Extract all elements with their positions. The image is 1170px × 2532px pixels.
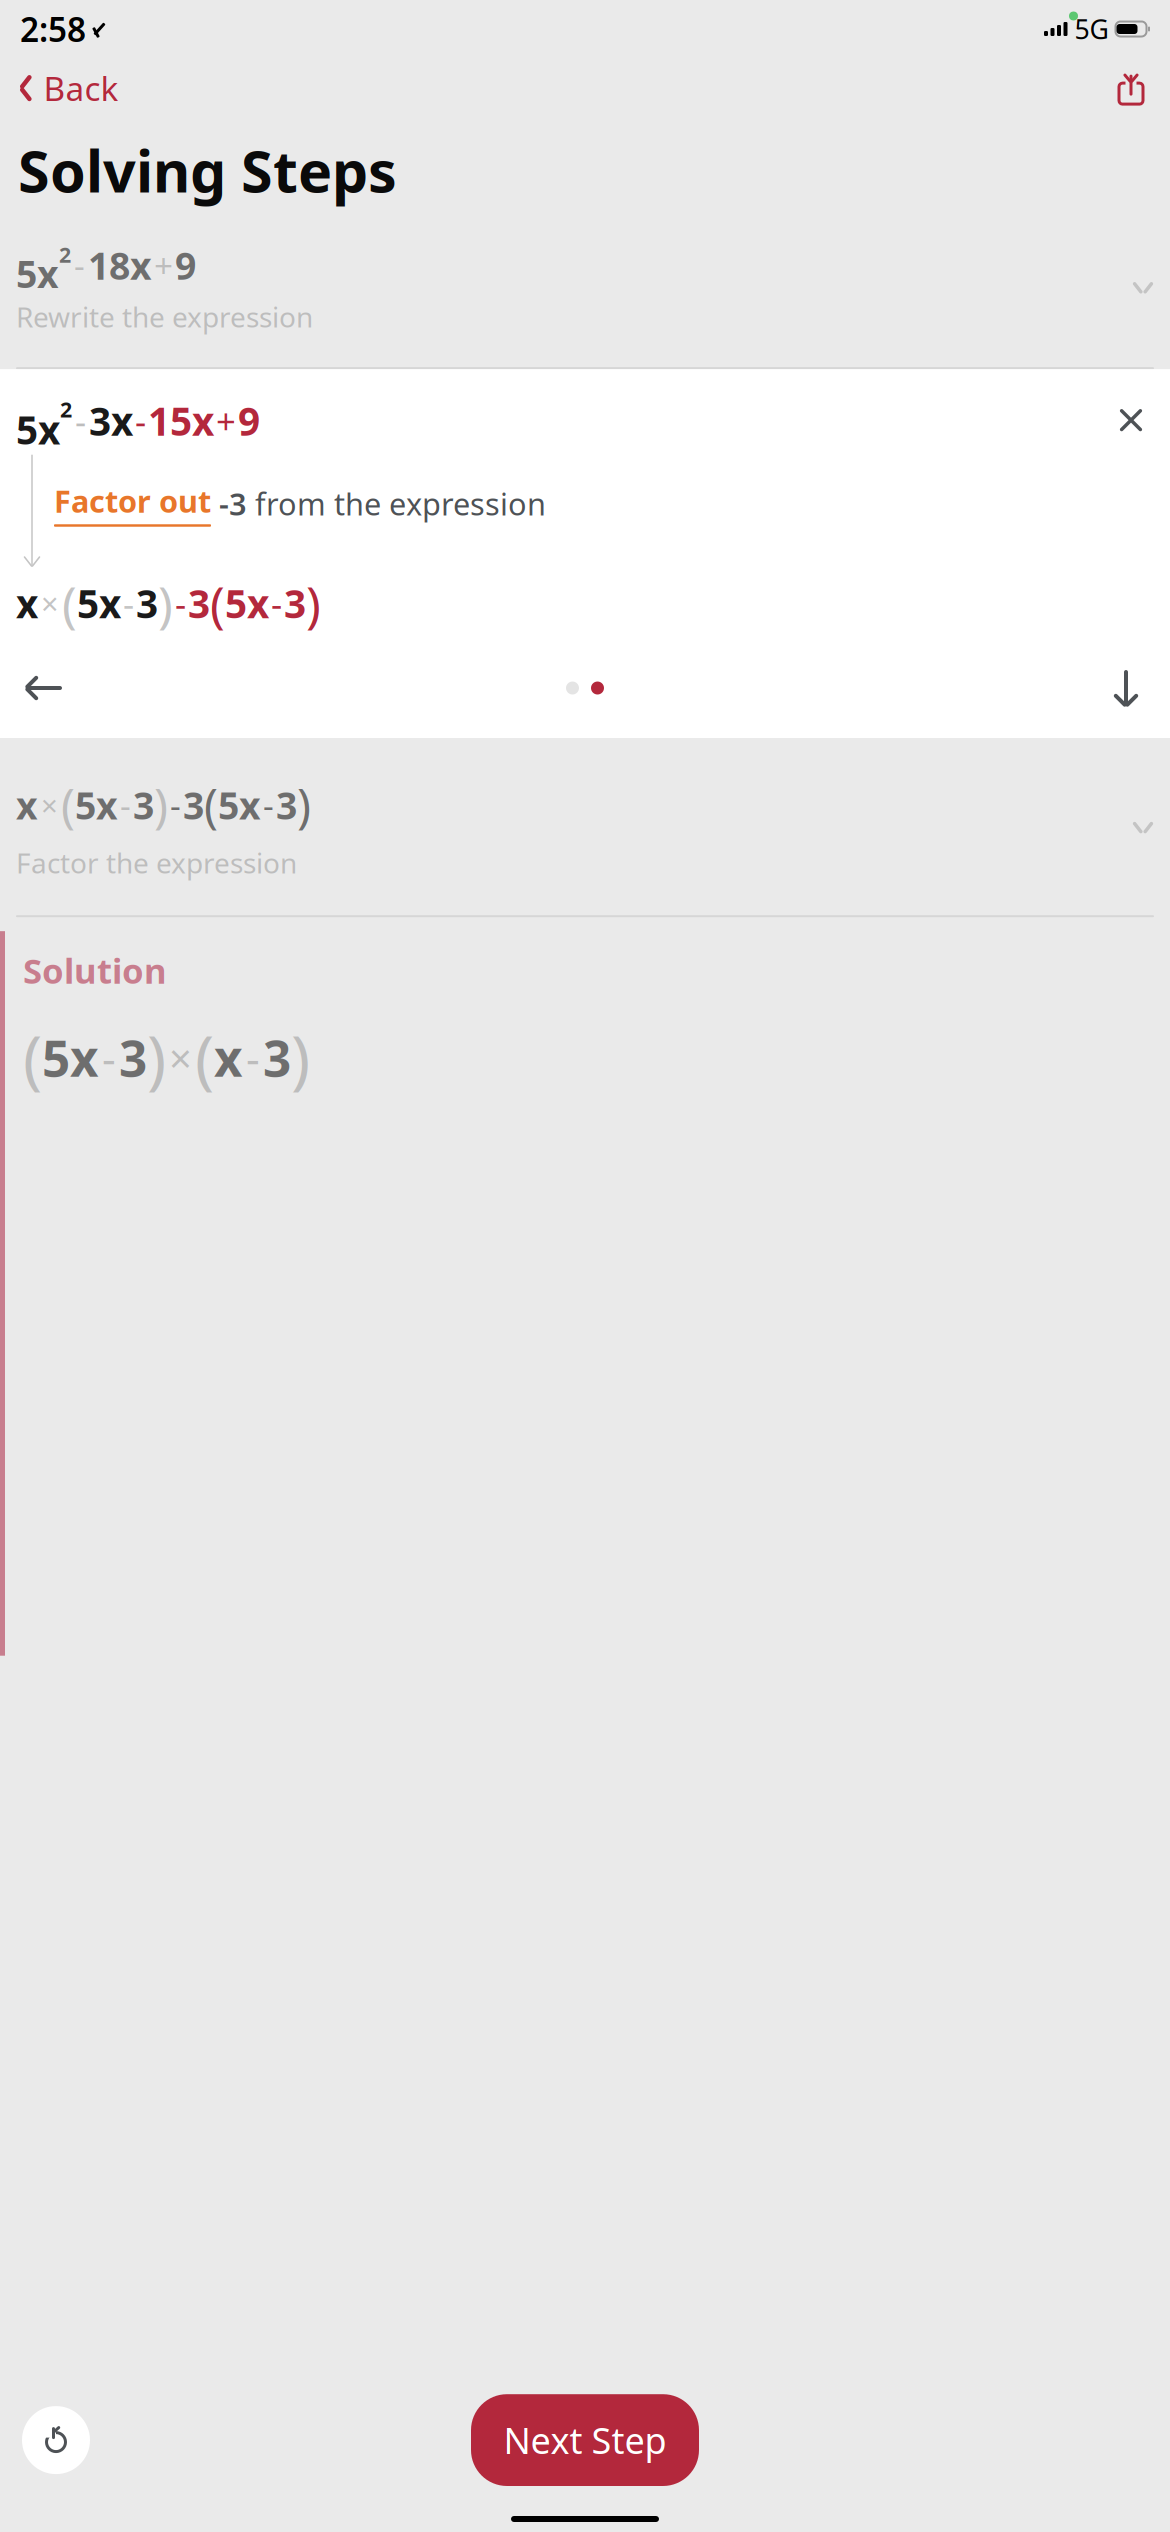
staticText: 2	[60, 395, 72, 423]
staticText: 3	[119, 1025, 147, 1090]
staticText: 5x	[16, 404, 60, 455]
staticText: ×	[169, 1031, 192, 1084]
staticText: Factor the expression	[16, 844, 297, 881]
staticText: 5x	[75, 780, 118, 830]
staticText: from the expression	[255, 483, 546, 524]
staticText: -	[135, 398, 146, 444]
staticText: -3	[211, 483, 255, 524]
button[interactable]: Previous hint	[16, 660, 72, 716]
staticText: 5x	[42, 1025, 99, 1090]
staticText: +	[216, 398, 236, 444]
staticText: 5G	[1074, 11, 1108, 47]
staticText: -	[74, 243, 85, 287]
button[interactable]: Next Step	[471, 2394, 699, 2486]
staticText: Factor out	[54, 480, 211, 521]
button[interactable]: Factor out	[54, 480, 211, 527]
button[interactable]: Undo	[22, 2406, 90, 2474]
staticText: 3	[276, 780, 297, 830]
staticText: (	[195, 1015, 214, 1100]
staticText: 2	[59, 240, 71, 269]
staticText: ×	[41, 583, 59, 624]
staticText: 18x	[88, 240, 152, 290]
staticText: Solving Steps	[18, 132, 397, 208]
staticText: x	[16, 578, 38, 629]
staticText: -	[75, 398, 86, 444]
staticText: -	[263, 783, 274, 827]
staticText: -	[246, 1029, 260, 1086]
staticText: Rewrite the expression	[16, 298, 313, 335]
staticText: x	[214, 1025, 243, 1090]
staticText: )	[154, 774, 168, 836]
staticText: (	[61, 774, 75, 836]
staticText: 2:58	[20, 7, 86, 51]
staticText: 3	[133, 780, 154, 830]
staticText: 3	[263, 1025, 291, 1090]
staticText: 3	[188, 578, 210, 629]
button[interactable]: Next hint	[1098, 660, 1154, 716]
staticText: -	[175, 580, 186, 626]
staticText: )	[291, 1015, 310, 1100]
staticText: -	[170, 783, 181, 827]
staticText: -	[123, 580, 134, 626]
staticText: )	[297, 774, 311, 836]
staticText: 5x	[16, 249, 59, 298]
staticText: ×	[41, 785, 58, 824]
button[interactable]: x	[0, 764, 1170, 891]
staticText: x	[16, 780, 38, 830]
staticText: (	[23, 1015, 42, 1100]
staticText: -	[271, 580, 282, 626]
staticText: 3	[136, 578, 158, 629]
button[interactable]: Close step	[1108, 397, 1154, 443]
staticText: 5x	[77, 578, 121, 629]
button[interactable]: 5x	[0, 230, 1170, 345]
button[interactable]: Back	[18, 58, 127, 118]
staticText: 5x	[218, 780, 261, 830]
staticText: 3	[183, 780, 204, 830]
staticText: +	[154, 243, 173, 287]
staticText: (	[204, 774, 218, 836]
staticText: Back	[44, 66, 119, 110]
staticText: -	[120, 783, 131, 827]
staticText: Solution	[23, 947, 167, 993]
staticText: -	[102, 1029, 116, 1086]
staticText: 9	[175, 240, 196, 290]
staticText: (	[62, 570, 77, 636]
staticText: )	[306, 570, 321, 636]
staticText: 3	[284, 578, 306, 629]
staticText: 3x	[89, 395, 133, 446]
staticText: 15x	[148, 395, 214, 446]
button[interactable]: Share	[1110, 66, 1152, 110]
staticText: 5x	[225, 578, 269, 629]
staticText: )	[147, 1015, 166, 1100]
staticText: 9	[238, 395, 260, 446]
staticText: )	[158, 570, 173, 636]
staticText: (	[210, 570, 225, 636]
staticText: Next Step	[503, 2416, 666, 2464]
